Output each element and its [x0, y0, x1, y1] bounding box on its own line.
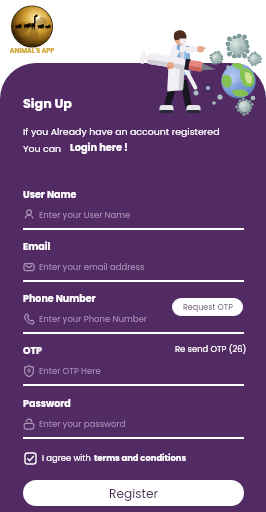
button[interactable]: Enter your password	[23, 415, 244, 433]
staticText: Request OTP	[183, 302, 233, 313]
button[interactable]: Enter your email address	[23, 258, 244, 276]
button[interactable]: Enter your Phone Number	[23, 310, 244, 328]
button[interactable]: Enter OTP Here	[23, 362, 244, 380]
staticText: You can	[23, 142, 62, 155]
staticText: Enter your Phone Number	[39, 313, 147, 325]
staticText: Login here !	[70, 141, 128, 155]
staticText: Email	[23, 240, 51, 253]
staticText: Password	[23, 397, 71, 410]
staticText: Enter OTP Here	[39, 365, 101, 377]
staticText: User Name	[23, 188, 77, 201]
staticText: Enter your email address	[39, 261, 145, 273]
staticText: terms and conditions	[94, 452, 187, 464]
staticText: I agree with	[42, 452, 94, 464]
staticText: Enter your User Name	[39, 209, 131, 221]
staticText: ANIMAL'S APP	[6, 46, 58, 55]
button[interactable]: Request OTP	[172, 298, 243, 316]
staticText: Re send OTP (26)	[175, 343, 247, 355]
staticText: If you Already have an account registere…	[23, 125, 220, 138]
staticText: Phone Number	[23, 292, 96, 305]
button[interactable]: Login here !	[70, 141, 128, 155]
button[interactable]: Re send OTP (26)	[175, 343, 247, 355]
button[interactable]: I agree with	[25, 452, 187, 464]
staticText: Register	[109, 485, 159, 502]
staticText: OTP	[23, 344, 43, 357]
button[interactable]: Enter your User Name	[23, 206, 244, 224]
staticText: Enter your password	[39, 418, 126, 430]
button[interactable]: Register	[23, 480, 244, 506]
staticText: Sign Up	[23, 95, 72, 113]
